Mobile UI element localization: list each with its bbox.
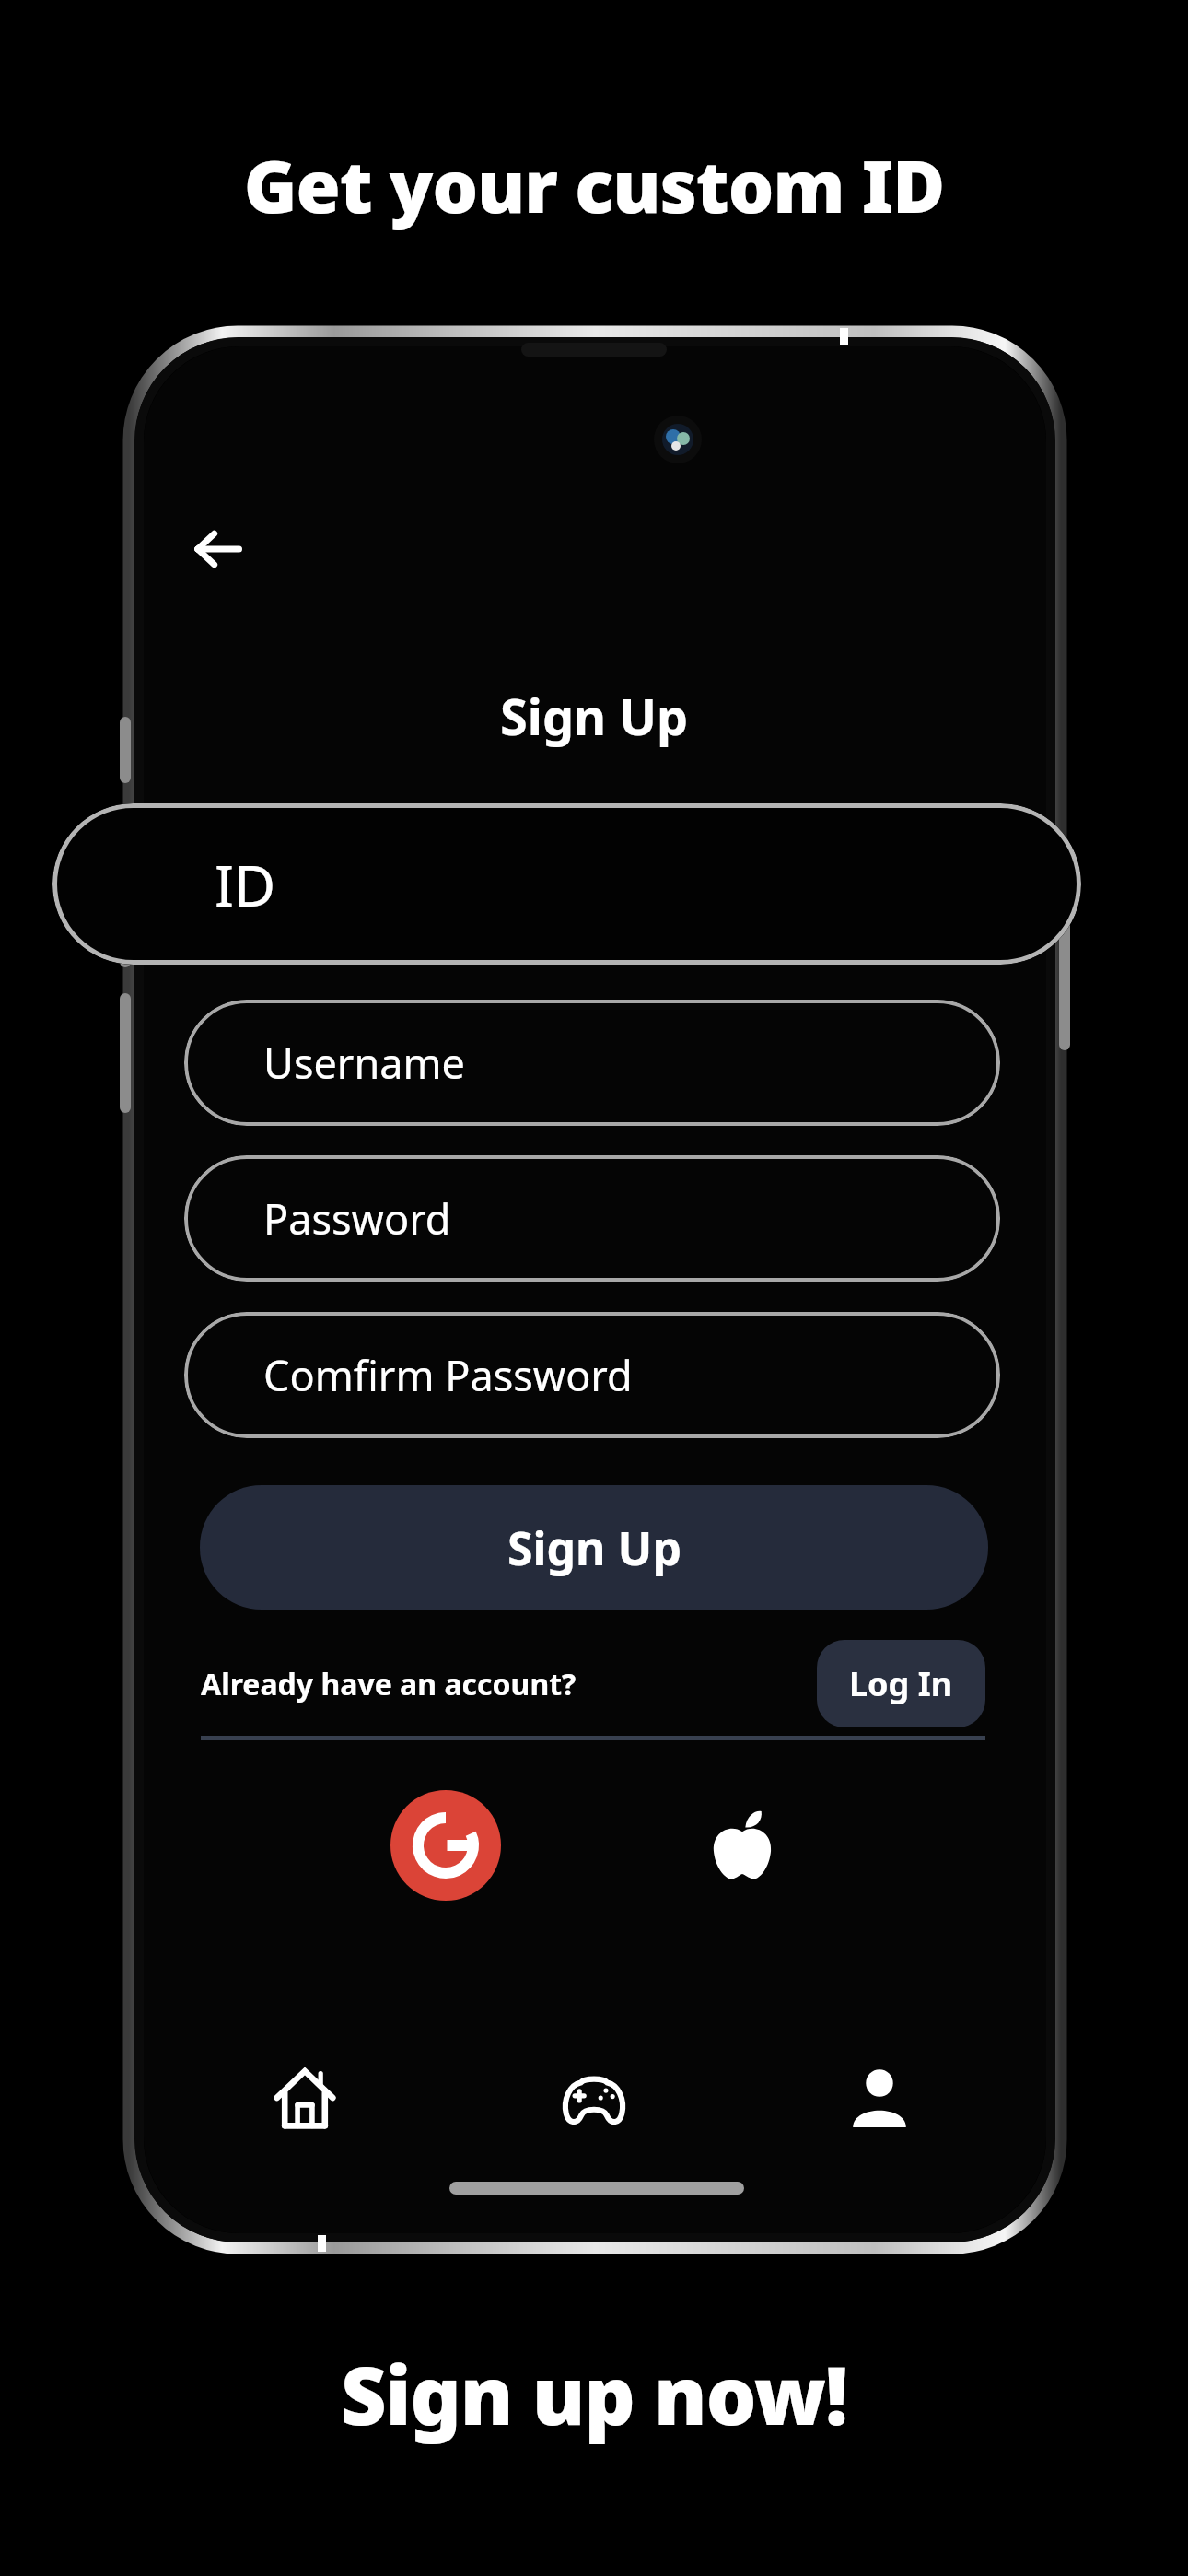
staticText: Sign Up	[507, 1516, 681, 1579]
button[interactable]: Comfirm Password	[184, 1312, 1000, 1438]
button[interactable]: ID	[52, 803, 1081, 965]
staticText: Comfirm Password	[263, 1347, 633, 1403]
staticText: Log In	[849, 1661, 953, 1706]
button[interactable]: Log In	[817, 1640, 985, 1727]
button[interactable]: Sign up with Google	[390, 1790, 501, 1901]
staticText: Get your custom ID	[0, 136, 1188, 234]
staticText: Sign Up	[500, 682, 689, 750]
button[interactable]: Sign Up	[200, 1485, 988, 1610]
button[interactable]: Back	[181, 512, 254, 586]
button[interactable]: Home	[254, 2047, 355, 2149]
staticText: Already have an account?	[201, 1664, 577, 1704]
button[interactable]: Games	[543, 2047, 645, 2149]
button[interactable]: Password	[184, 1155, 1000, 1282]
staticText: Password	[263, 1190, 451, 1247]
button[interactable]: Username	[184, 1000, 1000, 1126]
staticText: Sign up now!	[0, 2340, 1188, 2448]
button[interactable]: Profile	[829, 2047, 930, 2149]
button[interactable]: Sign up with Apple	[687, 1790, 798, 1901]
staticText: ID	[215, 846, 276, 923]
staticText: Username	[263, 1035, 465, 1091]
